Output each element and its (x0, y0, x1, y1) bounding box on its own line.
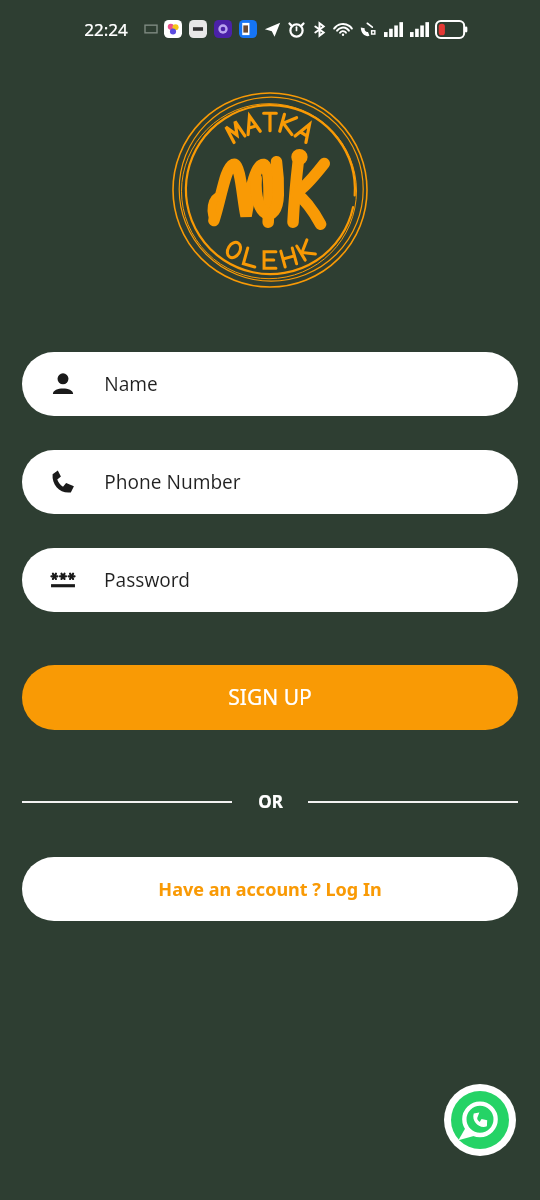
staticText: Name (104, 371, 158, 397)
staticText: Phone Number (104, 469, 241, 495)
staticText: Password (104, 567, 190, 593)
button[interactable]: Name (22, 352, 518, 416)
button[interactable]: Password (22, 548, 518, 612)
button[interactable]: Chat on WhatsApp (444, 1084, 516, 1156)
button[interactable]: Have an account ? Log In (22, 857, 518, 921)
button[interactable]: Phone Number (22, 450, 518, 514)
staticText: OR (258, 790, 283, 813)
staticText: Have an account ? Log In (158, 877, 382, 902)
staticText: 22:24 (84, 18, 128, 41)
button[interactable]: SIGN UP (22, 665, 518, 730)
staticText: SIGN UP (228, 683, 312, 712)
